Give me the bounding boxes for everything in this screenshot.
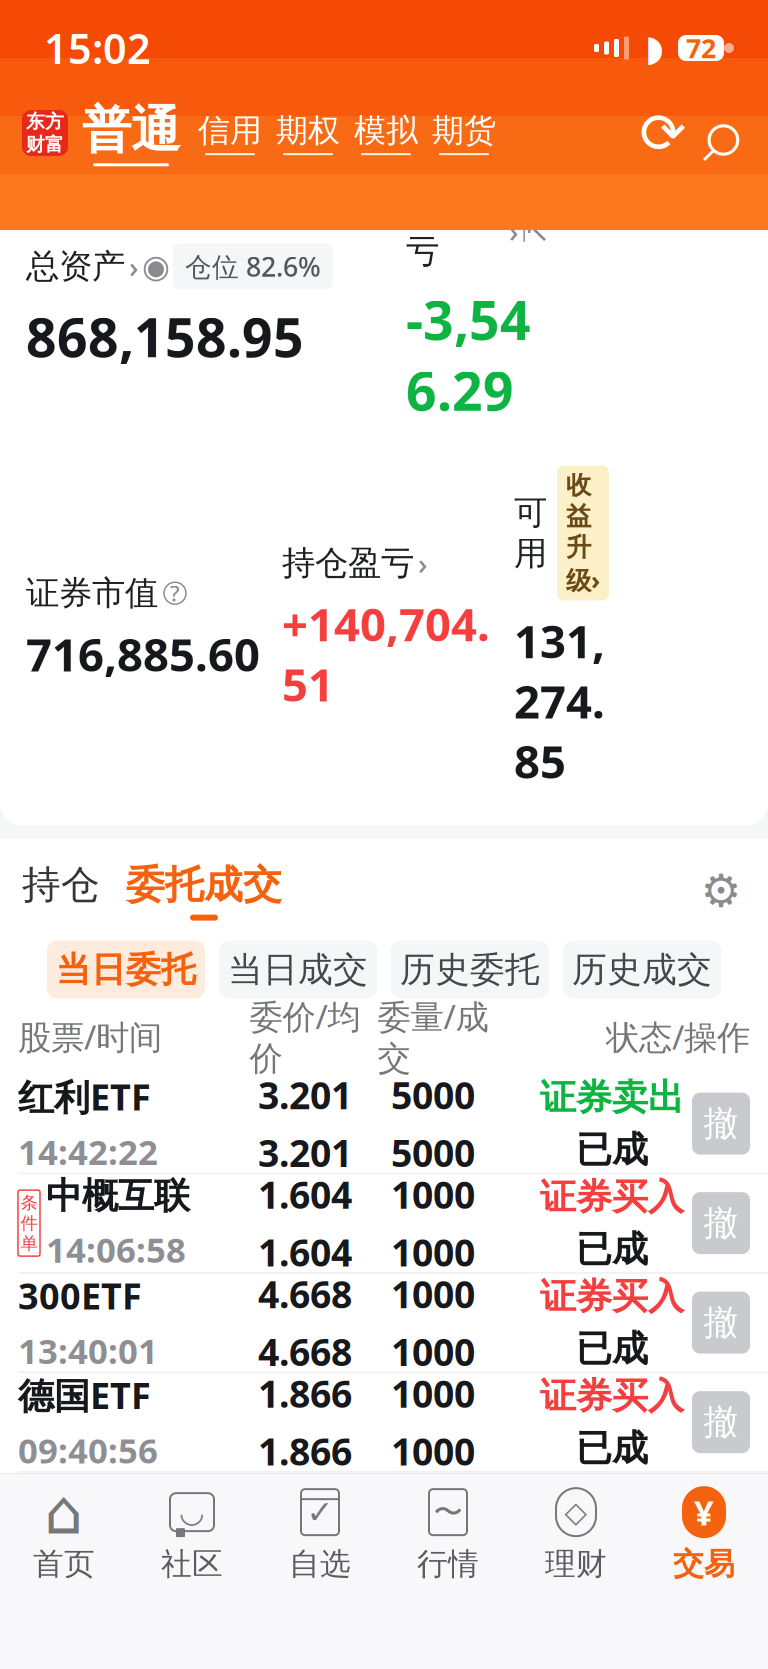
button[interactable]: 当日成交 [219,941,377,999]
staticText: 证券卖出 [540,1075,684,1120]
staticText: 已成 [576,1327,648,1371]
staticText: 撤 [703,1202,738,1244]
staticText: 件 [20,1212,37,1234]
button[interactable]: 隐藏金额 [139,249,173,283]
button[interactable]: 设置 [696,866,746,916]
staticText: › [509,211,519,250]
staticText: 仓位 82.6% [185,249,321,284]
staticText: 委价/均价 [249,994,360,1079]
button[interactable]: 详情 [519,215,551,247]
staticText: 证券买入 [540,1274,684,1319]
button[interactable]: 历史成交 [563,941,721,999]
staticText: 3.201 [258,1128,352,1177]
button[interactable]: 〜 [384,1480,512,1590]
button[interactable]: 300ETF [0,1274,768,1372]
button[interactable]: 持仓 [22,861,100,921]
button[interactable]: 期权 [276,111,340,155]
staticText: 300ETF [18,1272,142,1319]
button[interactable]: 历史委托 [391,941,549,999]
staticText: 14:42:22 [18,1128,158,1174]
staticText: 15:02 [44,21,151,75]
staticText: 持仓 [22,861,100,909]
staticText: 财富 [26,133,64,156]
staticText: 已成 [576,1227,648,1271]
button[interactable]: ¥ [640,1480,768,1590]
staticText: 持仓盈亏 [282,543,414,584]
staticText: 状态/操作 [606,1014,750,1059]
staticText: 3.201 [258,1070,352,1120]
button[interactable]: 撤 [692,1391,750,1453]
button[interactable]: 德国ETF [0,1373,768,1471]
button[interactable]: 当日委托 [47,941,205,999]
staticText: 1.604 [258,1169,352,1219]
staticText: 0.000 [258,1526,352,1575]
button[interactable]: ◡ [128,1480,256,1590]
button[interactable]: ⌂ [0,1480,128,1590]
staticText: 中概互联 [46,1174,190,1218]
staticText: 撤 [703,1500,738,1543]
staticText: 证券买入 [540,1175,684,1219]
staticText: 72 [686,30,716,66]
staticText: 撤 [703,1102,738,1145]
button[interactable]: 普通 [82,100,180,166]
staticText: 信用 [198,111,262,150]
button[interactable]: 总资产 [26,246,139,287]
button[interactable]: 持仓盈亏 [282,543,514,584]
staticText: 99.992 [247,1468,362,1518]
staticText: 4.668 [258,1269,352,1319]
button[interactable]: 收益升级› [557,465,609,600]
staticText: 条 [20,1192,37,1213]
staticText: 证券买入 [540,1374,684,1418]
staticText: 已报 [576,1526,648,1570]
button[interactable]: 模拟 [354,111,418,155]
staticText: 股票/时间 [18,1014,162,1059]
staticText: 1000 [391,1227,475,1277]
staticText: 1.866 [258,1368,352,1418]
staticText: 社区 [161,1545,223,1583]
staticText: 华宝添益 [18,1472,162,1517]
button[interactable]: 撤 [692,1491,750,1553]
staticText: 模拟 [354,111,418,150]
staticText: 单 [20,1233,37,1254]
staticText: 1.604 [258,1227,352,1277]
staticText: 期货 [432,111,496,150]
button[interactable]: 条 [0,1174,768,1272]
staticText: 首页 [33,1545,95,1583]
button[interactable]: 红利ETF [0,1075,768,1173]
button[interactable]: 撤 [692,1292,750,1354]
staticText: 已成 [576,1426,648,1470]
button[interactable]: 信用 [198,111,262,155]
button[interactable]: 撤 [692,1093,750,1155]
staticText: 当日盈亏 [406,190,505,272]
staticText: 200 [401,1468,464,1518]
staticText: 868,158.95 [26,301,304,372]
button[interactable]: 刷新 [638,108,688,158]
staticText: 131,274.85 [514,610,605,791]
staticText: 4.668 [258,1327,352,1376]
staticText: 交易 [673,1545,735,1583]
staticText: 1000 [391,1426,475,1476]
staticText: 行情 [417,1545,479,1583]
button[interactable]: 当日盈亏 [406,190,519,272]
button[interactable]: 搜索 [696,108,746,158]
staticText: 撤 [703,1301,738,1344]
staticText: 5000 [391,1070,475,1120]
button[interactable]: 撤 [692,1192,750,1254]
staticText: 理财 [545,1545,607,1583]
staticText: 1000 [391,1327,475,1376]
button[interactable]: 期货 [432,111,496,155]
staticText: 09:32:39 [18,1525,158,1571]
button[interactable]: 委托成交 [126,861,282,921]
button[interactable]: ✓ [256,1480,384,1590]
staticText: 1000 [391,1169,475,1219]
staticText: 1.866 [258,1426,352,1476]
staticText: 可用 [514,492,547,574]
staticText: 716,885.60 [26,624,260,684]
staticText: ◇ [564,1495,587,1529]
button[interactable]: 华宝添益 [0,1473,768,1571]
staticText: 5000 [391,1128,475,1177]
staticText: ✓ [306,1494,333,1530]
button[interactable]: ◇ [512,1480,640,1590]
staticText: 证券市值 [26,573,158,614]
staticText: 1000 [391,1269,475,1319]
